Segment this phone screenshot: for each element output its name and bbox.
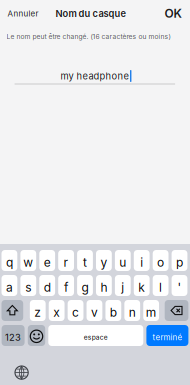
staticText: y	[100, 255, 107, 269]
button[interactable]: Shift	[1, 300, 23, 321]
button[interactable]: c	[68, 300, 83, 321]
staticText: p	[176, 255, 183, 269]
staticText: b	[110, 305, 117, 319]
button[interactable]: j	[115, 275, 131, 296]
staticText: s	[25, 280, 31, 294]
staticText: 123	[5, 332, 21, 343]
button[interactable]: r	[58, 250, 74, 271]
staticText: m	[146, 305, 157, 319]
staticText: c	[72, 305, 79, 319]
staticText: t	[83, 255, 87, 269]
button[interactable]: Annuler	[5, 3, 41, 23]
staticText: my headphone	[61, 70, 129, 82]
button[interactable]: m	[143, 300, 159, 321]
staticText: f	[64, 280, 68, 294]
staticText: r	[64, 255, 69, 269]
button[interactable]: e	[39, 250, 55, 271]
button[interactable]: p	[172, 250, 187, 271]
button[interactable]: f	[58, 275, 74, 296]
button[interactable]: q	[1, 250, 17, 271]
button[interactable]: terminé	[146, 325, 188, 346]
staticText: a	[6, 280, 13, 294]
button[interactable]: g	[77, 275, 93, 296]
button[interactable]: u	[115, 250, 131, 271]
staticText: n	[129, 305, 136, 319]
button[interactable]: i	[134, 250, 150, 271]
button[interactable]: t	[77, 250, 93, 271]
button[interactable]: y	[96, 250, 112, 271]
staticText: j	[121, 280, 124, 294]
staticText: Le nom peut être changé. (16 caractères …	[6, 32, 170, 41]
staticText: o	[157, 255, 164, 269]
button[interactable]: Next keyboard	[11, 362, 33, 384]
staticText: d	[44, 280, 51, 294]
staticText: k	[138, 280, 145, 294]
staticText: Nom du casque	[55, 8, 126, 19]
staticText: v	[91, 305, 98, 319]
staticText: x	[53, 305, 60, 319]
staticText: '	[177, 280, 181, 294]
staticText: Annuler	[7, 9, 38, 18]
staticText: OK	[164, 6, 181, 21]
staticText: terminé	[152, 332, 182, 342]
button[interactable]: o	[153, 250, 168, 271]
button[interactable]: a	[1, 275, 17, 296]
button[interactable]: Emoji	[28, 325, 45, 346]
staticText: u	[119, 255, 126, 269]
button[interactable]: espace	[48, 325, 143, 346]
button[interactable]: OK	[158, 4, 188, 22]
staticText: z	[34, 305, 41, 319]
staticText: w	[23, 255, 33, 269]
staticText: i	[140, 255, 143, 269]
button[interactable]: s	[20, 275, 36, 296]
button[interactable]: d	[39, 275, 55, 296]
button[interactable]: Delete	[165, 300, 188, 321]
button[interactable]: h	[96, 275, 112, 296]
button[interactable]: b	[105, 300, 121, 321]
button[interactable]: l	[153, 275, 168, 296]
button[interactable]: x	[49, 300, 65, 321]
staticText: h	[100, 280, 107, 294]
staticText: q	[6, 255, 13, 269]
staticText: g	[81, 280, 88, 294]
staticText: espace	[84, 333, 108, 341]
button[interactable]: z	[30, 300, 46, 321]
button[interactable]: v	[86, 300, 102, 321]
button[interactable]: '	[172, 275, 187, 296]
button[interactable]: n	[124, 300, 140, 321]
button[interactable]: w	[20, 250, 36, 271]
staticText: l	[159, 280, 162, 294]
button[interactable]: k	[134, 275, 150, 296]
staticText: e	[44, 255, 51, 269]
button[interactable]: 123	[2, 325, 25, 346]
